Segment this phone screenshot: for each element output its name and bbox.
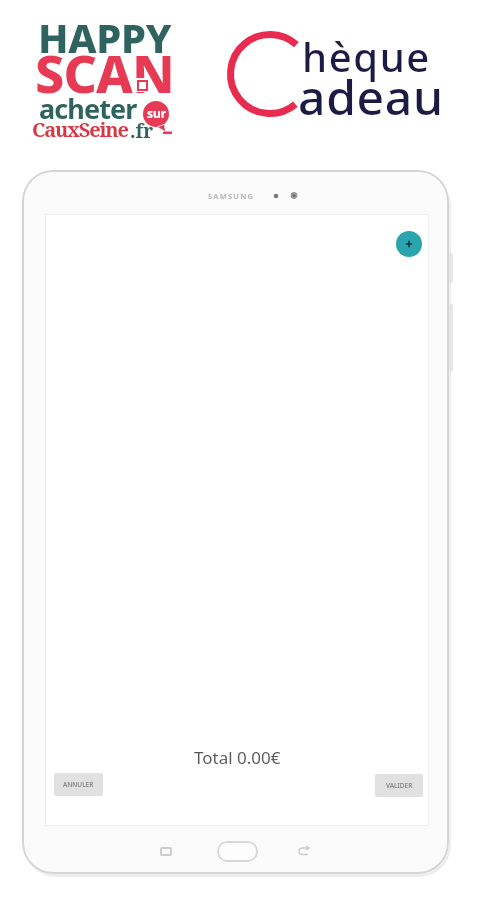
staticText: Total 0.00€	[194, 746, 281, 769]
button[interactable]: ANNULER	[54, 773, 103, 796]
button[interactable]	[298, 846, 310, 857]
staticText: .fr	[130, 118, 154, 144]
staticText: hèque	[302, 29, 431, 83]
staticText: SAMSUNG	[208, 191, 255, 201]
button[interactable]	[396, 231, 422, 257]
staticText: adeau	[298, 64, 444, 129]
staticText: acheter	[39, 90, 137, 127]
staticText: HAPPY	[38, 10, 172, 64]
staticText: ANNULER	[63, 780, 94, 789]
staticText: sur	[147, 105, 167, 121]
staticText: SCAN	[35, 37, 174, 108]
button[interactable]: VALIDER	[375, 774, 423, 797]
button[interactable]	[217, 841, 258, 862]
staticText: CauxSeine	[32, 116, 128, 143]
button[interactable]	[160, 847, 172, 856]
staticText: VALIDER	[386, 781, 413, 790]
